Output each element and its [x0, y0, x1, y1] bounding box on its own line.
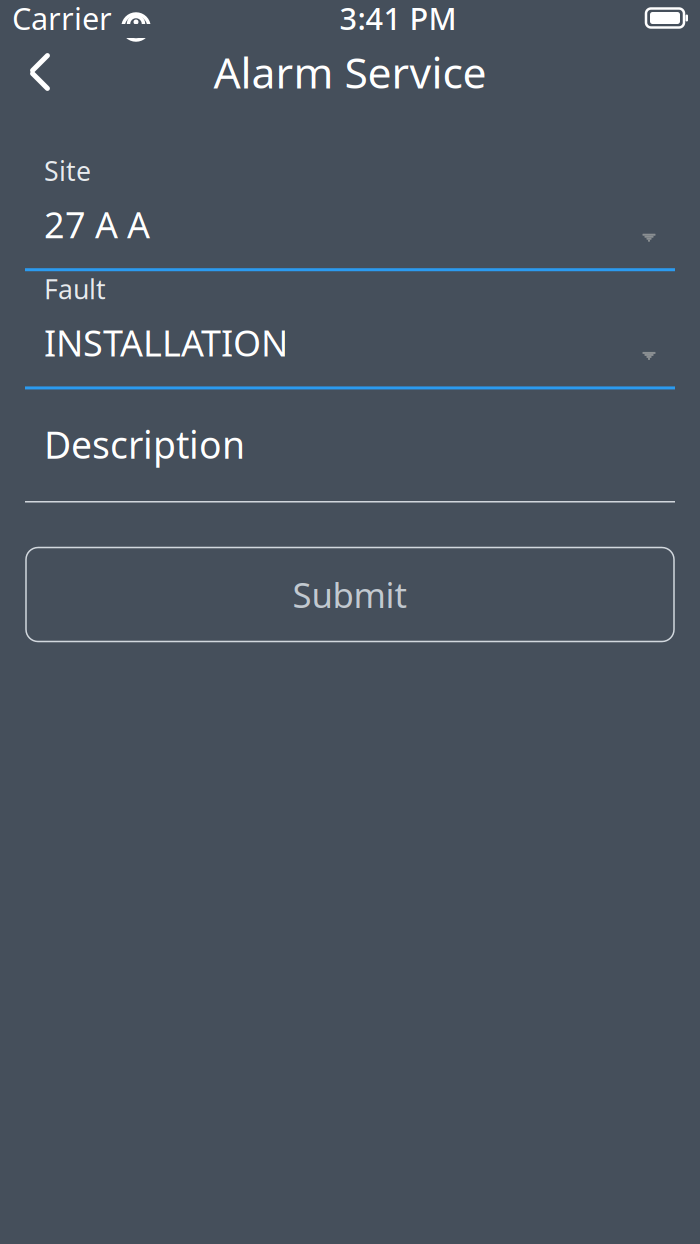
staticText: Description — [44, 419, 245, 469]
staticText: Carrier — [12, 0, 112, 38]
staticText: Alarm Service — [213, 44, 486, 100]
staticText: Fault — [44, 271, 106, 307]
button[interactable]: Submit — [26, 547, 674, 641]
staticText: 27 A A — [44, 200, 150, 248]
staticText: 3:41 PM — [339, 0, 456, 38]
button[interactable]: Description — [0, 389, 700, 502]
staticText: Submit — [292, 571, 407, 617]
button[interactable]: Fault — [0, 271, 700, 389]
staticText: Site — [44, 153, 91, 188]
button[interactable]: Site — [0, 153, 700, 271]
button[interactable]: Back — [12, 44, 68, 100]
staticText: INSTALLATION — [44, 319, 288, 366]
